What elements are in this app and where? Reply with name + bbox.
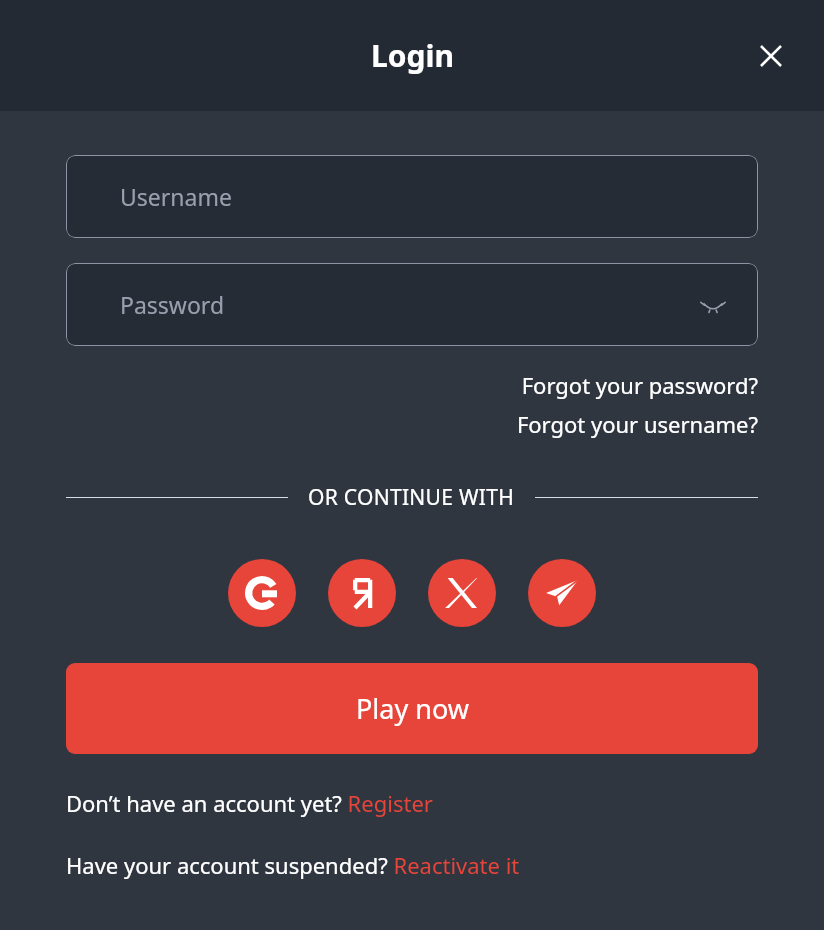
button[interactable]: Password — [66, 263, 758, 346]
staticText: Forgot your username? — [516, 409, 758, 439]
button[interactable]: Have your account suspended? Reactivate … — [66, 850, 758, 880]
button[interactable]: Username — [66, 155, 758, 238]
button[interactable]: Sign in with X — [428, 559, 496, 627]
button[interactable]: Close — [751, 36, 791, 76]
staticText: OR CONTINUE WITH — [308, 483, 515, 512]
staticText: Login — [371, 35, 454, 76]
button[interactable]: Show password — [694, 286, 732, 324]
staticText: Password — [120, 289, 225, 320]
staticText: Forgot your password? — [521, 370, 758, 400]
staticText: Play now — [356, 690, 469, 727]
button[interactable]: Sign in with Telegram — [528, 559, 596, 627]
staticText: Have your account suspended? Reactivate … — [66, 850, 520, 880]
staticText: Don’t have an account yet? Register — [66, 788, 433, 818]
staticText: Username — [120, 181, 232, 212]
button[interactable]: Sign in with Yandex — [328, 559, 396, 627]
button[interactable]: Don’t have an account yet? Register — [66, 788, 758, 818]
button[interactable]: Sign in with Google — [228, 559, 296, 627]
button[interactable]: Forgot your username? — [66, 409, 758, 439]
button[interactable]: Forgot your password? — [66, 370, 758, 400]
button[interactable]: Play now — [66, 663, 758, 754]
